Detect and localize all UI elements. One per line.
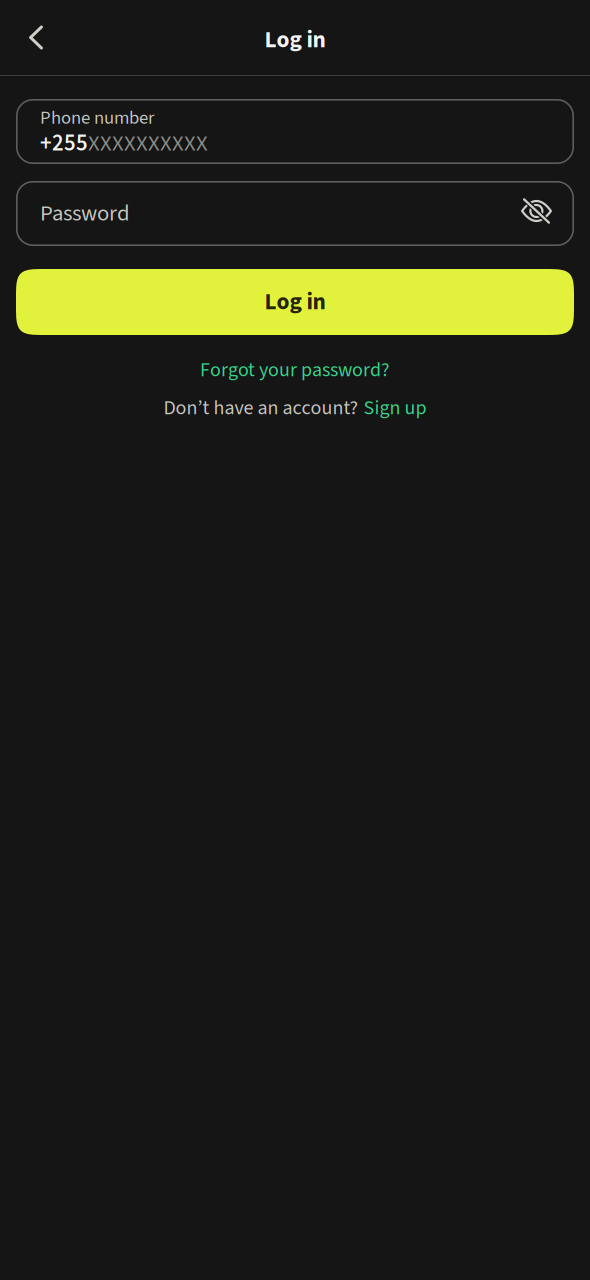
button[interactable]: Show password bbox=[508, 191, 552, 235]
button[interactable]: Log in bbox=[16, 269, 574, 335]
staticText: Password bbox=[40, 197, 130, 230]
button[interactable]: Forgot your password? bbox=[16, 358, 574, 382]
button[interactable]: Back bbox=[14, 15, 58, 59]
staticText: Log in bbox=[264, 285, 325, 319]
button[interactable]: Sign up bbox=[363, 394, 426, 422]
staticText: +255 bbox=[40, 127, 88, 160]
staticText: Log in bbox=[264, 23, 325, 57]
staticText: XXXXXXXXXX bbox=[88, 127, 208, 160]
staticText: Don’t have an account? bbox=[163, 394, 358, 422]
staticText: Sign up bbox=[363, 394, 426, 422]
staticText: Forgot your password? bbox=[200, 356, 390, 384]
staticText: Phone number bbox=[40, 105, 154, 131]
